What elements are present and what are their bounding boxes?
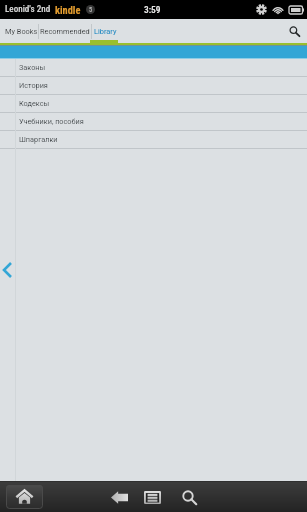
staticText: Library xyxy=(94,27,117,36)
button[interactable]: Search xyxy=(179,487,199,507)
button[interactable]: Menu xyxy=(142,487,163,507)
button[interactable]: Учебники, пособия xyxy=(0,113,307,130)
button[interactable]: My Books xyxy=(0,19,38,43)
staticText: Recommended xyxy=(40,27,90,36)
button[interactable]: Recommended xyxy=(39,19,91,43)
button[interactable]: История xyxy=(0,77,307,94)
staticText: Учебники, пособия xyxy=(19,117,84,126)
staticText: Шпаргалки xyxy=(19,135,58,144)
button[interactable]: Library xyxy=(92,19,119,43)
staticText: My Books xyxy=(5,27,38,36)
button[interactable]: Законы xyxy=(0,59,307,76)
staticText: Законы xyxy=(19,63,46,72)
staticText: Leonid's 2nd xyxy=(5,4,51,15)
button[interactable]: Back xyxy=(108,487,130,507)
button[interactable]: Кодексы xyxy=(0,95,307,112)
staticText: 5 xyxy=(89,6,93,14)
staticText: 3:59 xyxy=(144,4,161,15)
button[interactable]: Home xyxy=(6,485,43,509)
button[interactable]: Search xyxy=(286,23,302,39)
staticText: История xyxy=(19,81,48,90)
staticText: kindle xyxy=(55,4,81,16)
staticText: Кодексы xyxy=(19,99,50,108)
button[interactable]: Previous panel xyxy=(3,262,12,278)
button[interactable]: Шпаргалки xyxy=(0,131,307,148)
